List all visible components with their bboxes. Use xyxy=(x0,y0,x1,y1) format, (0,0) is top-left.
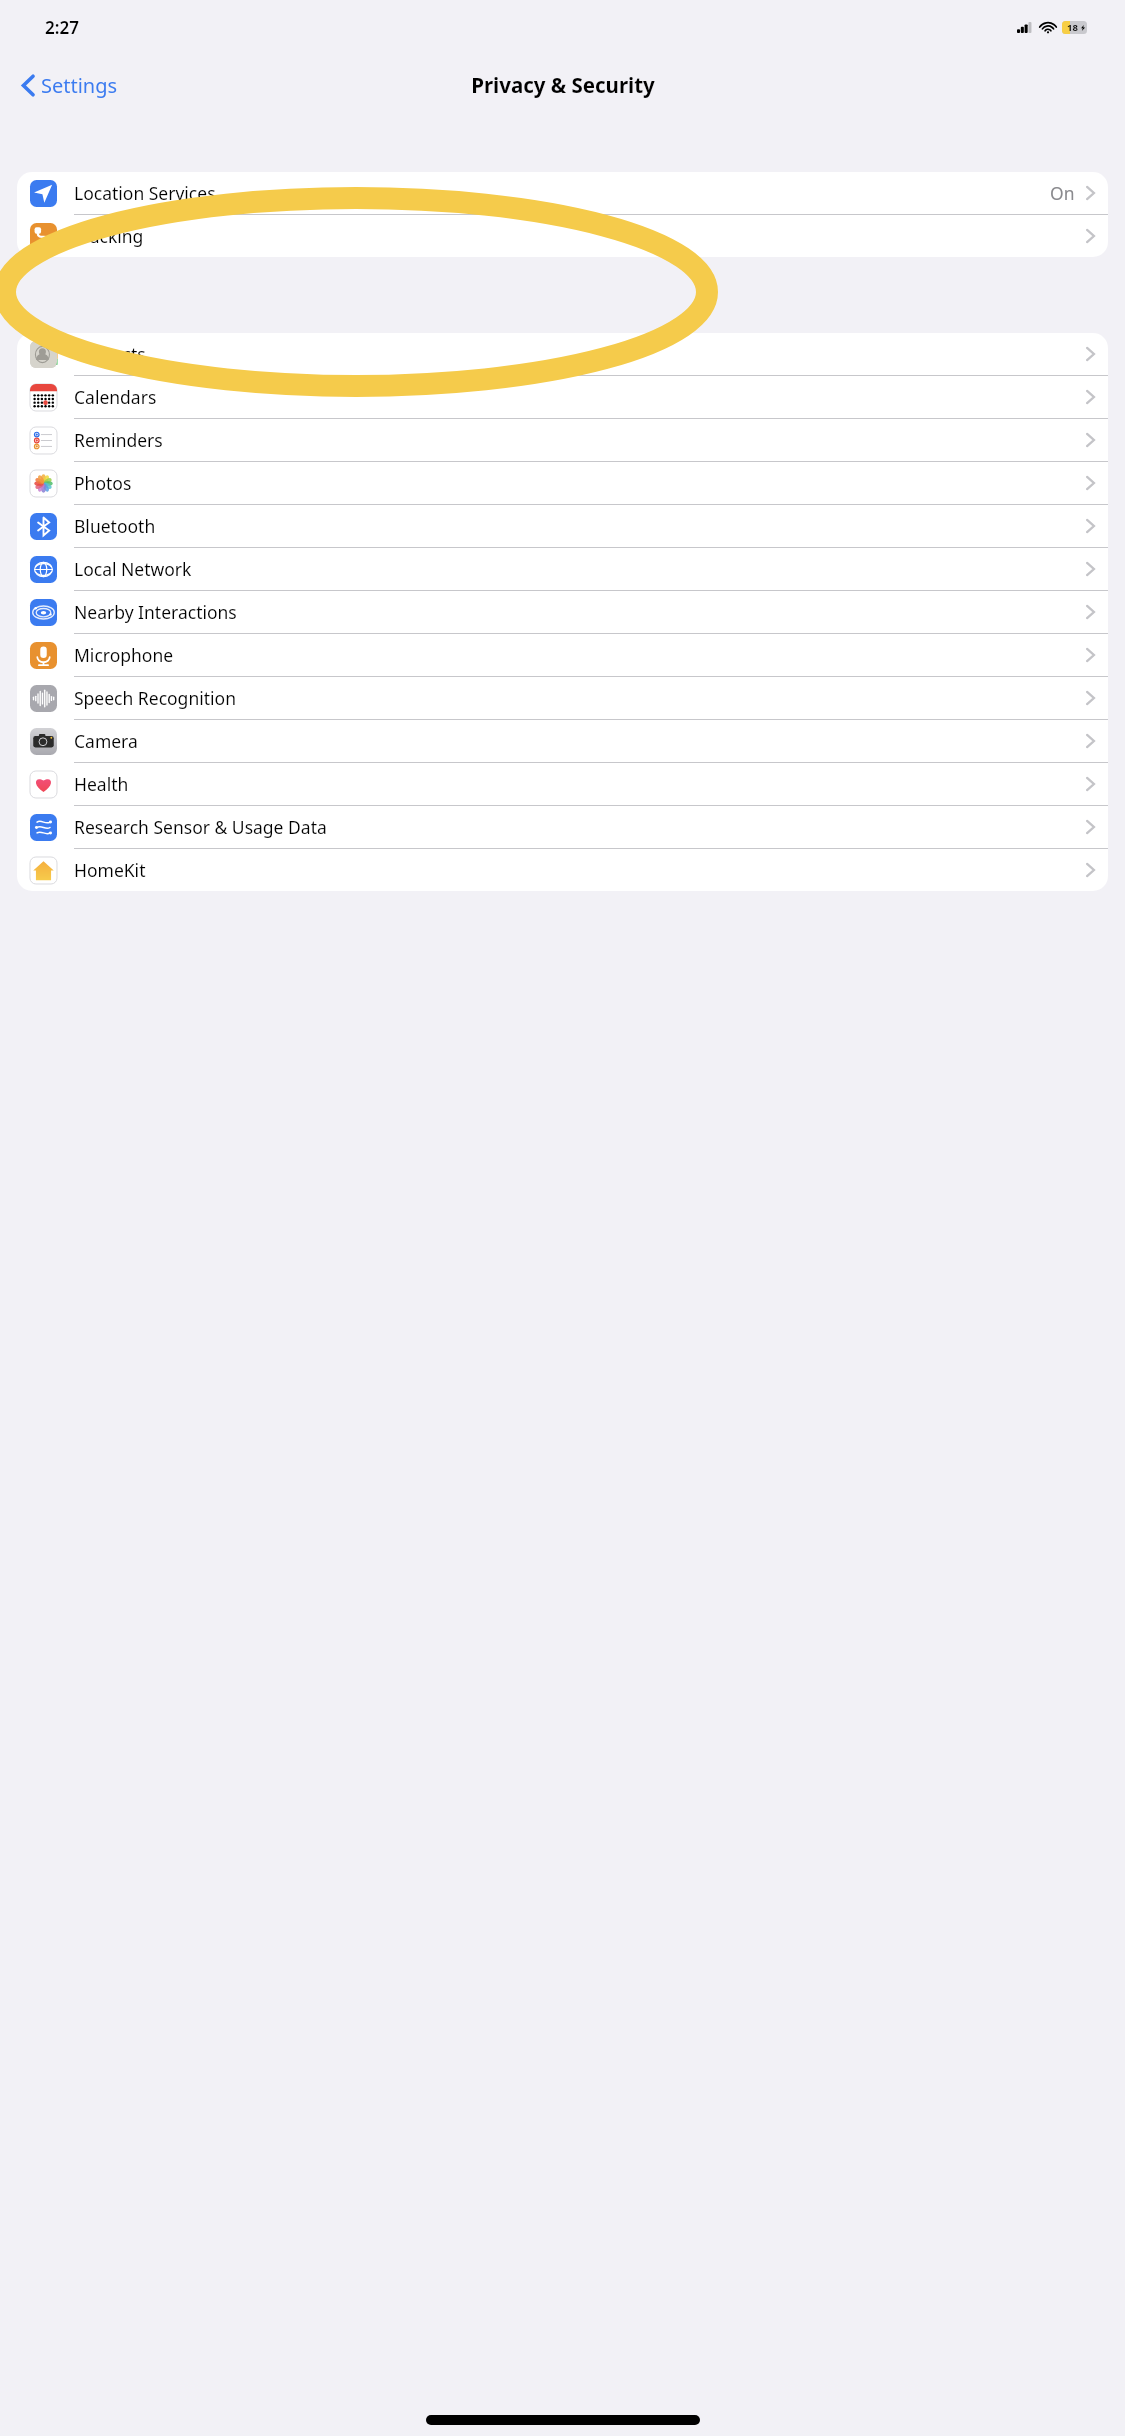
button[interactable]: Reminders xyxy=(17,419,1108,462)
button[interactable]: Contacts xyxy=(17,333,1108,376)
button[interactable]: Location Services xyxy=(17,172,1108,215)
staticText: Tracking xyxy=(74,224,144,248)
button[interactable]: Health xyxy=(17,763,1108,806)
button[interactable]: Microphone xyxy=(17,634,1108,677)
button[interactable]: Photos xyxy=(17,462,1108,505)
staticText: Settings xyxy=(41,72,118,99)
staticText: Local Network xyxy=(74,557,192,581)
button[interactable]: Speech Recognition xyxy=(17,677,1108,720)
button[interactable]: HomeKit xyxy=(17,849,1108,891)
button[interactable]: Tracking xyxy=(17,215,1108,257)
staticText: HomeKit xyxy=(74,858,146,882)
button[interactable]: Bluetooth xyxy=(17,505,1108,548)
staticText: Speech Recognition xyxy=(74,686,236,710)
staticText: Nearby Interactions xyxy=(74,600,237,624)
button[interactable]: Settings xyxy=(16,66,124,105)
button[interactable]: Calendars xyxy=(17,376,1108,419)
staticText: Microphone xyxy=(74,643,174,667)
staticText: Location Services xyxy=(74,181,216,205)
staticText: Privacy & Security xyxy=(471,71,655,99)
staticText: Photos xyxy=(74,471,132,495)
staticText: 2:27 xyxy=(45,16,79,39)
button[interactable]: Research Sensor & Usage Data xyxy=(17,806,1108,849)
staticText: Camera xyxy=(74,729,138,753)
button[interactable]: Camera xyxy=(17,720,1108,763)
button[interactable]: Nearby Interactions xyxy=(17,591,1108,634)
staticText: On xyxy=(1050,181,1075,205)
staticText: Research Sensor & Usage Data xyxy=(74,815,327,839)
staticText: Bluetooth xyxy=(74,514,156,538)
staticText: Reminders xyxy=(74,428,163,452)
staticText: Contacts xyxy=(74,342,146,366)
button[interactable]: Local Network xyxy=(17,548,1108,591)
staticText: Calendars xyxy=(74,385,157,409)
staticText: Health xyxy=(74,772,129,796)
staticText: 18 xyxy=(1067,21,1078,34)
